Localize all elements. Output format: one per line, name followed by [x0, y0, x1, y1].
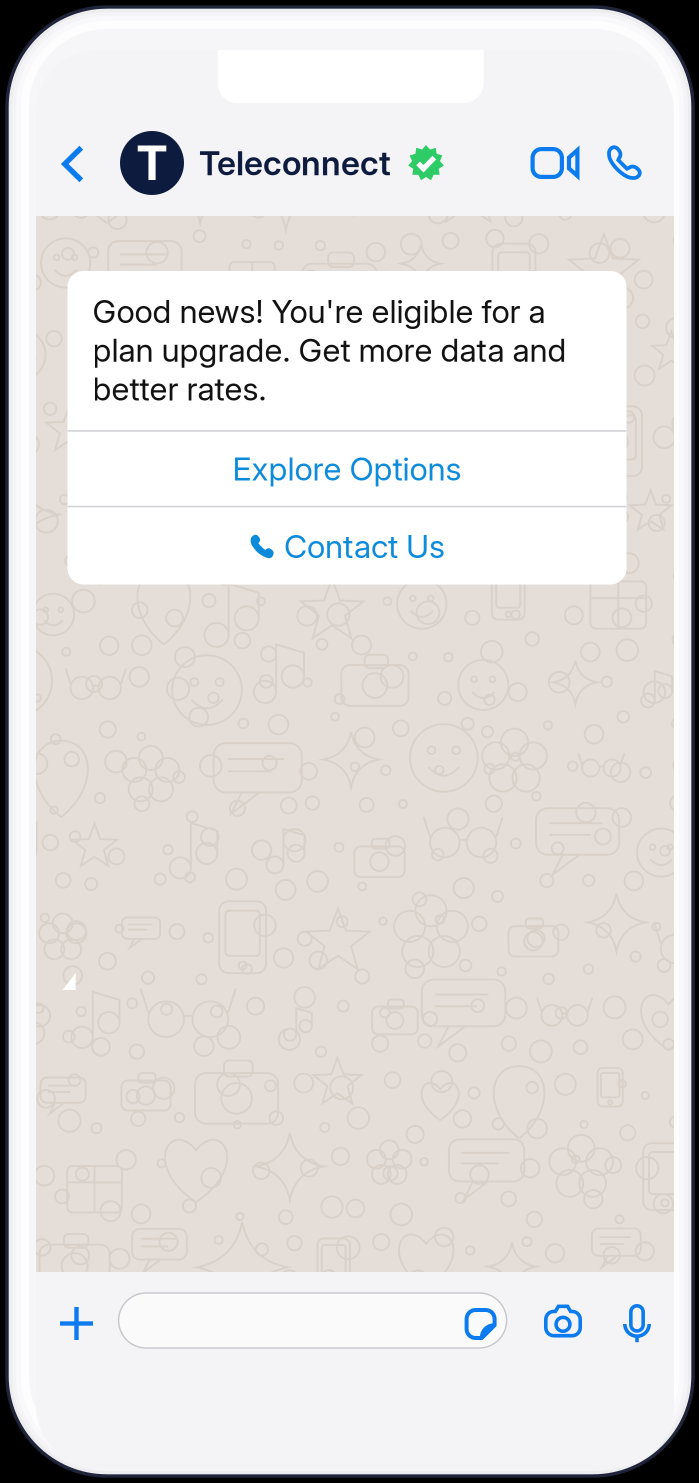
button[interactable]: Voice call [595, 132, 653, 194]
staticText: Teleconnect [199, 143, 391, 183]
button[interactable]: Camera [533, 1291, 593, 1351]
button[interactable]: Video call [524, 132, 586, 194]
button[interactable]: Voice message [609, 1294, 665, 1354]
staticText: Explore Options [232, 449, 461, 488]
staticText: Good news! You're eligible for a plan up… [92, 292, 566, 408]
button[interactable]: Explore Options [67, 432, 626, 506]
button[interactable]: Stickers [456, 1299, 506, 1349]
button[interactable]: Contact Us [67, 507, 626, 585]
staticText: T [136, 134, 168, 192]
button[interactable]: Attach [46, 1293, 107, 1354]
button[interactable]: Back [44, 133, 102, 195]
staticText: Contact Us [284, 527, 445, 566]
button[interactable]: Teleconnect [199, 132, 444, 194]
